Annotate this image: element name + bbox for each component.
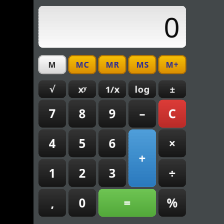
staticText: 0 [164, 8, 180, 45]
staticText: xʸ [78, 83, 86, 95]
staticText: ÷ [169, 165, 176, 181]
staticText: M [48, 59, 56, 70]
staticText: + [139, 150, 146, 166]
button[interactable]: ± [159, 80, 186, 98]
button[interactable]: 0 [69, 189, 96, 216]
button[interactable]: C [159, 100, 186, 127]
button[interactable]: 2 [69, 159, 96, 187]
button[interactable]: 8 [69, 100, 96, 127]
staticText: % [167, 195, 178, 211]
staticText: M+ [166, 59, 179, 70]
button[interactable]: MC [69, 56, 96, 74]
staticText: MR [106, 59, 119, 70]
staticText: × [169, 135, 176, 151]
staticText: √ [49, 84, 55, 94]
button[interactable]: 7 [39, 100, 66, 127]
button[interactable]: = [99, 189, 156, 216]
staticText: 4 [49, 135, 56, 151]
button[interactable]: 9 [99, 100, 126, 127]
staticText: 6 [109, 135, 116, 151]
button[interactable]: log [129, 80, 156, 98]
staticText: 0 [79, 195, 86, 211]
staticText: 3 [109, 165, 116, 181]
button[interactable]: × [159, 130, 186, 157]
staticText: = [124, 195, 131, 211]
staticText: , [51, 195, 54, 211]
staticText: 9 [109, 106, 116, 122]
button[interactable]: √ [39, 80, 66, 98]
staticText: MS [136, 59, 148, 70]
button[interactable]: – [129, 100, 156, 127]
button[interactable]: 5 [69, 130, 96, 157]
staticText: 8 [79, 106, 86, 122]
button[interactable]: xʸ [69, 80, 96, 98]
staticText: 1/x [105, 83, 119, 95]
staticText: C [168, 106, 176, 122]
staticText: 5 [79, 135, 86, 151]
staticText: – [139, 106, 145, 122]
button[interactable]: ÷ [159, 159, 186, 187]
button[interactable]: M+ [159, 56, 186, 74]
button[interactable]: 3 [99, 159, 126, 187]
button[interactable]: 1/x [99, 80, 126, 98]
button[interactable]: M [39, 56, 66, 74]
button[interactable]: % [159, 189, 186, 216]
staticText: 2 [79, 165, 86, 181]
button[interactable]: 1 [39, 159, 66, 187]
staticText: 1 [49, 165, 56, 181]
staticText: ± [170, 83, 175, 95]
staticText: log [135, 83, 150, 95]
button[interactable]: 6 [99, 130, 126, 157]
button[interactable]: MS [129, 56, 156, 74]
staticText: 7 [49, 106, 56, 122]
button[interactable]: + [129, 130, 156, 187]
staticText: MC [76, 59, 89, 70]
button[interactable]: , [39, 189, 66, 216]
button[interactable]: 4 [39, 130, 66, 157]
button[interactable]: MR [99, 56, 126, 74]
